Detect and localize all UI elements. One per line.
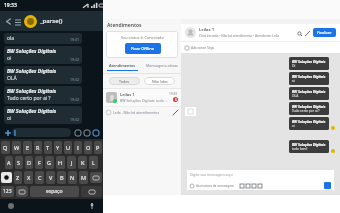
button[interactable]: Back — [0, 11, 103, 31]
button[interactable]: S — [15, 156, 23, 169]
button[interactable]: Voice input — [87, 201, 97, 211]
staticText: J — [71, 159, 73, 166]
button[interactable]: O — [84, 141, 92, 154]
button[interactable]: Shift — [1, 172, 12, 183]
button[interactable]: A — [5, 156, 13, 169]
staticText: 6 — [175, 98, 177, 102]
button[interactable]: Leilas 1 — [103, 89, 181, 106]
button[interactable]: Emoji — [245, 183, 251, 189]
button[interactable]: Sticker — [73, 128, 82, 137]
staticText: BW Soluções Digitais — [292, 59, 326, 64]
staticText: Leila - Não há atendimentos — [113, 110, 160, 115]
button[interactable]: Tag — [181, 42, 340, 53]
staticText: Seu status é: Conectado — [121, 35, 164, 40]
button[interactable]: Backspace — [90, 172, 102, 183]
button[interactable]: BW Soluções Digitais — [289, 117, 329, 130]
button[interactable]: I — [74, 141, 82, 154]
button[interactable]: BW Soluções Digitais — [289, 57, 329, 70]
staticText: Atendimentos — [107, 22, 142, 29]
button[interactable]: ola — [4, 33, 82, 44]
button[interactable]: Transfer — [303, 29, 311, 37]
staticText: BW Soluções Digitais — [7, 108, 57, 115]
staticText: Q — [3, 144, 8, 151]
staticText: H — [58, 159, 63, 166]
staticText: Oi — [292, 64, 296, 68]
button[interactable]: U — [64, 141, 72, 154]
button[interactable]: Attach — [3, 128, 12, 137]
button[interactable]: Attach file — [239, 183, 245, 189]
button[interactable]: V — [46, 171, 55, 184]
button[interactable]: Não lidos — [144, 77, 175, 85]
button[interactable]: Emoji — [16, 186, 28, 197]
button[interactable]: BW Soluções Digitais — [4, 86, 82, 104]
button[interactable]: D — [25, 156, 33, 169]
button[interactable]: R — [34, 141, 42, 154]
button[interactable] — [185, 107, 196, 116]
button[interactable]: Back — [3, 16, 13, 26]
button[interactable]: T — [44, 141, 52, 154]
button[interactable]: Menu — [13, 17, 22, 26]
button[interactable]: BW Soluções Digitais — [4, 46, 82, 64]
button[interactable]: Search — [295, 29, 303, 37]
button[interactable]: Home — [6, 201, 16, 211]
button[interactable]: Y — [54, 141, 62, 154]
button[interactable]: espaço — [30, 186, 79, 197]
button[interactable]: Mensagens ativas — [142, 61, 181, 73]
button[interactable]: Leila - Não há atendimentos — [103, 107, 181, 118]
button[interactable]: Z — [14, 171, 22, 184]
button[interactable]: Camera — [82, 128, 91, 137]
staticText: _parse() — [40, 17, 63, 25]
staticText: Finalizar — [317, 30, 332, 35]
button[interactable]: M — [79, 171, 88, 184]
staticText: oi — [292, 79, 295, 83]
button[interactable]: Voice message — [91, 128, 100, 137]
button[interactable]: BW Soluções Digitais — [289, 87, 329, 100]
button[interactable]: E — [23, 141, 32, 154]
button[interactable]: Todos — [109, 77, 140, 85]
staticText: Adicionar Tags — [191, 45, 215, 50]
button[interactable]: Finalizar — [313, 28, 336, 37]
button[interactable]: Profile photo — [24, 15, 37, 28]
button[interactable]: N — [68, 171, 77, 184]
button[interactable]: Ficar Offline — [125, 43, 161, 54]
button[interactable]: C — [35, 171, 44, 184]
button[interactable]: Contact avatar — [185, 27, 196, 38]
button[interactable]: X — [24, 171, 33, 184]
button[interactable]: BW Soluções Digitais — [4, 66, 82, 84]
button[interactable]: Image — [251, 183, 257, 189]
staticText: espaço — [46, 188, 63, 195]
staticText: F — [38, 159, 41, 166]
button[interactable]: Q — [1, 141, 10, 154]
button[interactable]: L — [89, 156, 98, 169]
staticText: Digite sua mensagem aqui — [190, 172, 233, 177]
staticText: E — [26, 144, 30, 151]
button[interactable]: Send — [324, 182, 331, 189]
button[interactable]: G — [45, 156, 54, 169]
button[interactable]: Record — [257, 183, 263, 189]
button[interactable]: P — [94, 141, 102, 154]
button[interactable]: BW Soluções Digitais — [289, 72, 329, 85]
button[interactable] — [12, 128, 71, 137]
button[interactable]: BW Soluções Digitais — [289, 140, 329, 153]
button[interactable]: K — [78, 156, 87, 169]
staticText: 19:31 — [70, 37, 79, 42]
button[interactable]: F — [35, 156, 43, 169]
button[interactable]: H — [56, 156, 65, 169]
button[interactable]: Atendimentos — [103, 61, 142, 73]
staticText: Leilas 1 — [120, 92, 135, 97]
staticText: Todos — [119, 79, 130, 84]
staticText: N — [70, 174, 75, 181]
button[interactable]: W — [12, 141, 21, 154]
staticText: S — [17, 159, 21, 166]
button[interactable]: BW Soluções Digitais — [4, 106, 82, 124]
button[interactable]: Digite sua mensagem aqui — [186, 169, 335, 180]
button[interactable]: Enter — [81, 186, 102, 197]
staticText: Tudo certo por ai ? — [292, 109, 320, 113]
staticText: R — [36, 144, 40, 151]
staticText: Y — [56, 144, 60, 151]
button[interactable]: B — [57, 171, 66, 184]
button[interactable]: BW Soluções Digitais — [289, 102, 329, 115]
button[interactable]: J — [67, 156, 76, 169]
button[interactable]: 123 — [1, 186, 14, 197]
other: Edit — [173, 110, 178, 115]
